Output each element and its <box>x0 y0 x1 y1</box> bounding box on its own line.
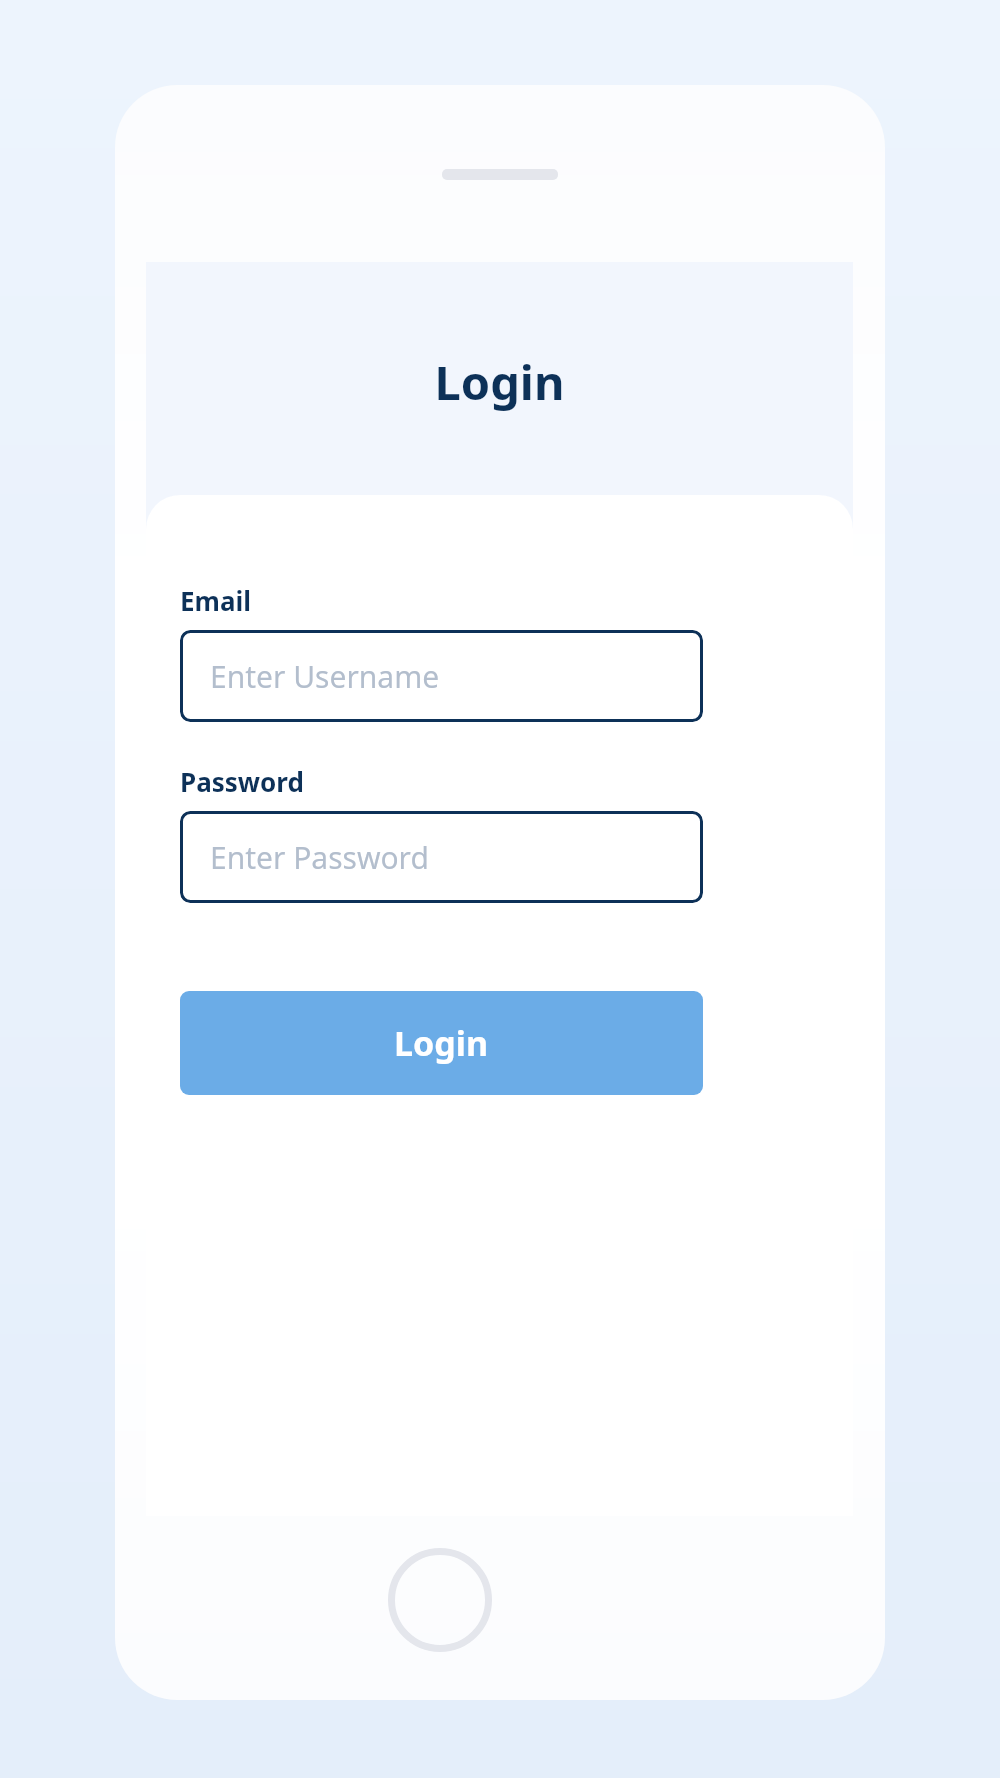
staticText: Login <box>146 350 853 414</box>
button[interactable]: Home <box>388 1548 492 1652</box>
button[interactable]: Enter Username <box>180 630 703 722</box>
staticText: Enter Password <box>210 837 429 878</box>
staticText: Email <box>180 583 252 618</box>
staticText: Password <box>180 764 304 799</box>
staticText: Enter Username <box>210 656 440 697</box>
button[interactable]: Login <box>180 991 703 1095</box>
button[interactable]: Enter Password <box>180 811 703 903</box>
staticText: Login <box>394 1020 489 1066</box>
